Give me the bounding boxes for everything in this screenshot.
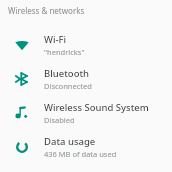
staticText: Wireless & networks: [8, 5, 85, 16]
staticText: Disconnected: [44, 81, 92, 91]
other: Wireless Sound System: [15, 106, 29, 120]
staticText: Bluetooth: [44, 67, 90, 80]
staticText: "hendricks": [44, 47, 85, 57]
staticText: 436 MB of data used: [44, 149, 117, 159]
button[interactable]: Bluetooth: [0, 62, 172, 96]
button[interactable]: Wireless Sound System: [0, 96, 172, 130]
staticText: Data usage: [44, 135, 96, 148]
staticText: Disabled: [44, 115, 75, 125]
staticText: Wi-Fi: [44, 33, 67, 46]
button[interactable]: Wi-Fi: [0, 28, 172, 62]
other: Wi-Fi: [15, 38, 29, 52]
other: Data usage: [15, 140, 29, 154]
other: Bluetooth: [15, 72, 29, 86]
button[interactable]: Data usage: [0, 130, 172, 164]
staticText: Wireless Sound System: [44, 101, 149, 114]
